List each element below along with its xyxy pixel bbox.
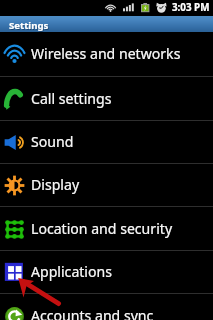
staticText: Display <box>31 175 80 194</box>
staticText: 3:03 PM <box>172 1 210 14</box>
staticText: Wireless and networks <box>31 44 181 63</box>
button[interactable]: Display <box>0 164 213 207</box>
staticText: Applications <box>31 262 112 281</box>
staticText: Location and security <box>31 219 173 238</box>
button[interactable]: Call settings <box>0 77 213 121</box>
staticText: Call settings <box>31 89 112 108</box>
button[interactable]: Accounts and sync <box>0 294 213 320</box>
staticText: Accounts and sync <box>31 306 154 320</box>
staticText: Settings <box>10 20 50 33</box>
button[interactable]: Location and security <box>0 207 213 251</box>
button[interactable]: Wireless and networks <box>0 32 213 77</box>
button[interactable]: Sound <box>0 121 213 164</box>
button[interactable]: Applications <box>0 251 213 294</box>
staticText: Sound <box>31 132 74 151</box>
staticText: Settings <box>9 19 49 32</box>
